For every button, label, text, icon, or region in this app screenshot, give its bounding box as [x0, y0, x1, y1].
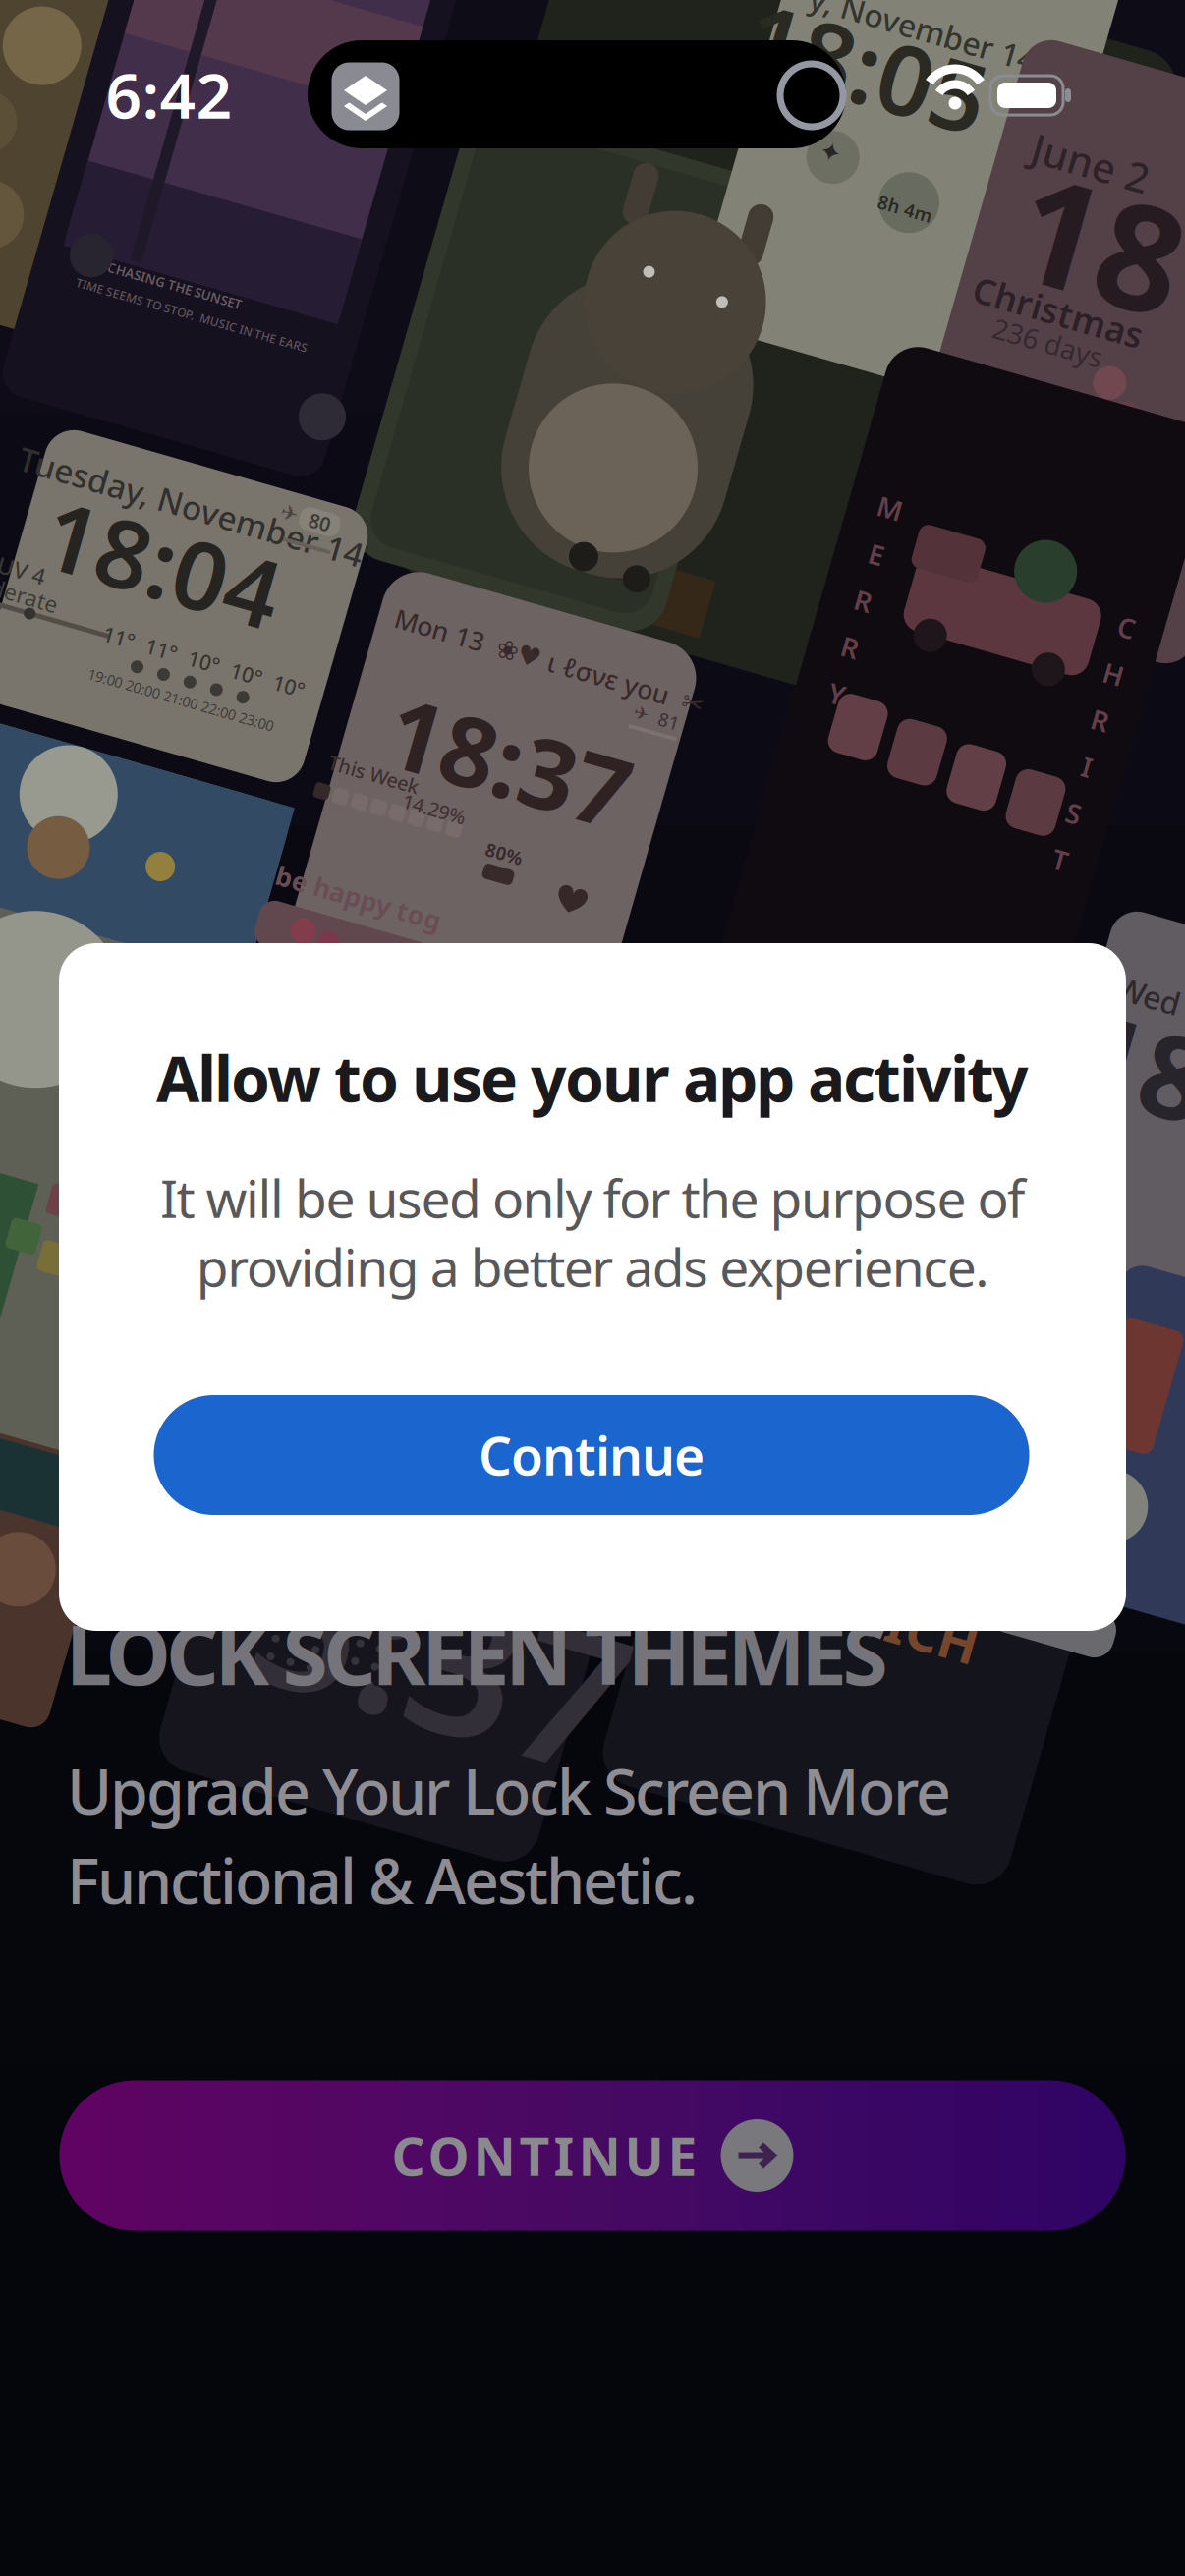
- staticText: Continue: [479, 1420, 705, 1490]
- staticText: Christmas: [961, 304, 1137, 351]
- staticText: R: [818, 662, 836, 698]
- staticText: LOCK SCREEN THEMES: [66, 1598, 888, 1708]
- staticText: 236 days: [991, 341, 1104, 378]
- staticText: CHASING THE SUNSET: [141, 289, 281, 306]
- staticText: 18:37: [333, 688, 581, 817]
- staticText: Mon 13 ❀♥ ι ℓσνε you ✂: [308, 628, 628, 663]
- staticText: y, November 14: [775, 9, 1009, 50]
- staticText: H: [1077, 615, 1098, 651]
- staticText: Allow to use your app activity: [156, 1036, 1029, 1120]
- staticText: 18: [987, 151, 1155, 346]
- staticText: TIME SEEMS TO STOP. MUSIC IN THE EARS: [115, 313, 356, 329]
- staticText: CONTINUE: [392, 2121, 697, 2190]
- staticText: oderate: [0, 623, 62, 652]
- staticText: 6:42: [106, 53, 232, 136]
- staticText: T: [1080, 808, 1096, 845]
- staticText: 18:05: [726, 17, 972, 146]
- staticText: 5:37: [287, 1519, 666, 1772]
- staticText: ✦: [826, 159, 848, 189]
- staticText: Wed: [1079, 986, 1145, 1028]
- staticText: S: [1080, 760, 1095, 796]
- staticText: I: [1083, 711, 1093, 748]
- staticText: Y: [819, 710, 836, 747]
- staticText: 18: [1061, 999, 1185, 1152]
- staticText: UV 4: [0, 599, 42, 629]
- staticText: ✈ 81: [563, 658, 610, 682]
- staticText: 80%: [458, 831, 497, 855]
- staticText: R: [1079, 663, 1097, 700]
- button[interactable]: Continue: [154, 1395, 1029, 1515]
- staticText: 14.29%: [366, 806, 430, 832]
- staticText: June 2: [979, 148, 1100, 202]
- staticText: Tuesday, November 14: [0, 484, 341, 528]
- staticText: It will be used only for the purpose of: [160, 1163, 1025, 1232]
- staticText: 11° 11° 10° 10° 10°: [113, 637, 323, 665]
- button[interactable]: CONTINUE: [59, 2080, 1126, 2231]
- staticText: E: [819, 565, 835, 602]
- staticText: Functional & Aesthetic.: [67, 1839, 698, 1921]
- staticText: ✈: [251, 473, 268, 497]
- staticText: 18:04: [30, 505, 272, 631]
- staticText: be happy tog: [264, 908, 435, 943]
- staticText: C: [1079, 566, 1097, 603]
- staticText: M: [815, 517, 840, 553]
- button[interactable]: Live activity: [332, 62, 399, 130]
- staticText: Upgrade Your Lock Screen More: [67, 1750, 951, 1831]
- staticText: 8h 4m: [897, 195, 953, 219]
- staticText: 80: [280, 472, 302, 498]
- staticText: providing a better ads experience.: [196, 1232, 989, 1301]
- staticText: This Week: [283, 790, 377, 816]
- staticText: 19:00 20:00 21:00 22:00 23:00: [110, 685, 303, 704]
- staticText: TICH: [881, 1581, 1006, 1651]
